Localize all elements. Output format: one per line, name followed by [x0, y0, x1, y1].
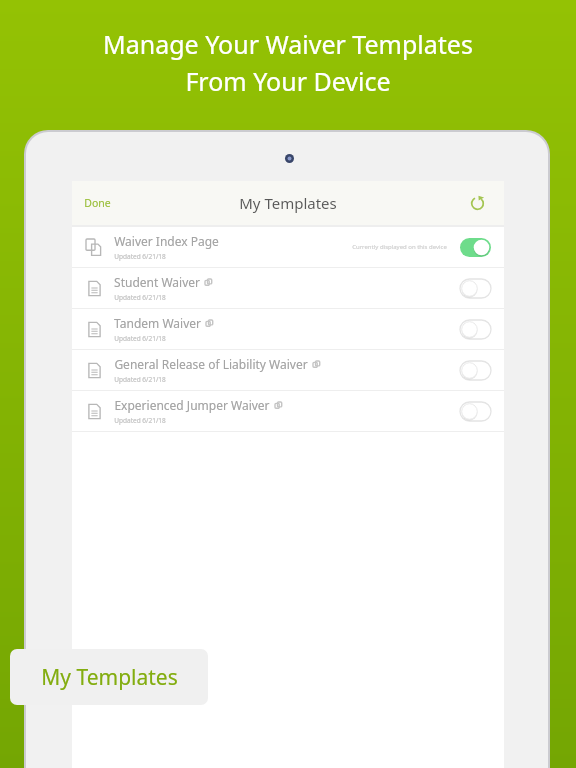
- button[interactable]: General Release of Liability Waiver: [72, 349, 504, 390]
- staticText: My Templates: [239, 193, 337, 213]
- staticText: My Templates: [41, 663, 178, 692]
- button[interactable]: Done: [76, 188, 119, 218]
- staticText: Currently displayed on this device: [352, 243, 447, 251]
- staticText: Student Waiver: [114, 274, 200, 290]
- button[interactable]: Refresh: [464, 190, 490, 216]
- button[interactable]: Student Waiver: [72, 267, 504, 308]
- button[interactable]: Experienced Jumper Waiver: [72, 390, 504, 431]
- staticText: Updated 6/21/18: [114, 334, 166, 343]
- staticText: From Your Device: [185, 64, 391, 98]
- staticText: Updated 6/21/18: [114, 375, 166, 384]
- button[interactable]: Disabled: [460, 279, 491, 298]
- staticText: Tandem Waiver: [114, 315, 201, 331]
- button[interactable]: Enabled: [460, 238, 491, 257]
- button[interactable]: My Templates: [10, 649, 208, 705]
- staticText: Done: [84, 196, 111, 210]
- button[interactable]: Waiver Index Page: [72, 226, 504, 267]
- button[interactable]: Tandem Waiver: [72, 308, 504, 349]
- staticText: Waiver Index Page: [114, 233, 219, 249]
- staticText: Manage Your Waiver Templates: [103, 27, 473, 61]
- staticText: Experienced Jumper Waiver: [114, 397, 270, 413]
- button[interactable]: Disabled: [460, 361, 491, 380]
- staticText: Updated 6/21/18: [114, 252, 166, 261]
- staticText: Updated 6/21/18: [114, 293, 166, 302]
- staticText: Updated 6/21/18: [114, 416, 166, 425]
- button[interactable]: Disabled: [460, 320, 491, 339]
- button[interactable]: Disabled: [460, 402, 491, 421]
- staticText: General Release of Liability Waiver: [114, 356, 308, 372]
